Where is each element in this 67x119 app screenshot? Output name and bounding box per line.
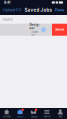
button[interactable]: Delete	[52, 24, 67, 36]
button[interactable]: Inbox	[27, 108, 40, 119]
button[interactable]: Me	[54, 108, 67, 119]
staticText: Inbox	[30, 115, 36, 118]
button[interactable]: Designer	[0, 24, 52, 36]
staticText: Saved Jobs	[24, 7, 51, 13]
staticText: Jobs	[17, 115, 23, 118]
staticText: Upload CV	[3, 8, 21, 12]
staticText: Delete	[54, 28, 64, 32]
staticText: Done	[55, 8, 64, 12]
staticText: SAVED	[2, 18, 12, 22]
staticText: More	[44, 115, 50, 118]
staticText: 9:41	[4, 0, 10, 5]
staticText: Acme · NY	[31, 30, 39, 36]
button[interactable]: More	[40, 108, 54, 119]
staticText: Designer	[29, 23, 39, 30]
button[interactable]: Home	[0, 108, 13, 119]
staticText: Me	[59, 115, 62, 118]
button[interactable]: Done	[53, 5, 65, 15]
button[interactable]: Jobs	[13, 108, 27, 119]
staticText: Home	[3, 115, 10, 118]
button[interactable]: Upload CV	[1, 5, 22, 15]
